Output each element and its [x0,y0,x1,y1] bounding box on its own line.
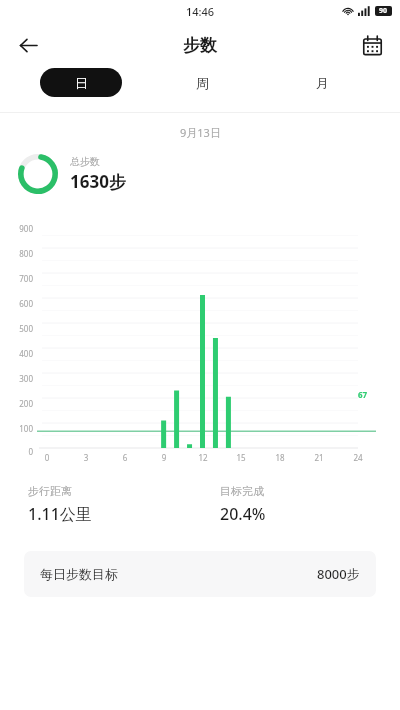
staticText: 日 [75,75,88,91]
staticText: 3 [80,452,92,463]
staticText: 8000步 [317,565,360,583]
button[interactable]: 周 [162,68,242,97]
staticText: 90 [379,6,388,16]
staticText: 步行距离 [28,484,72,498]
staticText: 9 [158,452,170,463]
button[interactable]: Back [10,27,46,63]
staticText: 14:46 [186,4,215,19]
staticText: 500 [0,323,33,334]
staticText: 18 [274,452,286,463]
staticText: 步数 [183,35,217,56]
staticText: 总步数 [70,155,100,168]
staticText: 周 [196,75,209,91]
button[interactable]: Calendar [354,27,390,63]
staticText: 0 [41,452,53,463]
staticText: 1630步 [70,170,126,193]
staticText: 700 [0,273,33,284]
staticText: 300 [0,373,33,384]
staticText: 24 [352,452,364,463]
staticText: 100 [0,423,33,434]
button[interactable]: 日 [40,68,122,97]
staticText: 0 [0,446,33,457]
staticText: 21 [313,452,325,463]
staticText: 月 [316,75,329,91]
staticText: 600 [0,298,33,309]
staticText: 12 [197,452,209,463]
staticText: 400 [0,348,33,359]
staticText: 6 [119,452,131,463]
staticText: 1.11公里 [28,503,92,525]
staticText: 每日步数目标 [40,566,118,582]
staticText: 20.4% [220,503,266,525]
staticText: 9月13日 [180,125,221,140]
button[interactable]: 每日步数目标 [24,551,376,597]
staticText: 67 [358,389,368,400]
staticText: 900 [0,223,33,234]
staticText: 15 [235,452,247,463]
staticText: 800 [0,248,33,259]
staticText: 目标完成 [220,484,264,498]
button[interactable]: 月 [282,68,362,97]
staticText: 200 [0,398,33,409]
